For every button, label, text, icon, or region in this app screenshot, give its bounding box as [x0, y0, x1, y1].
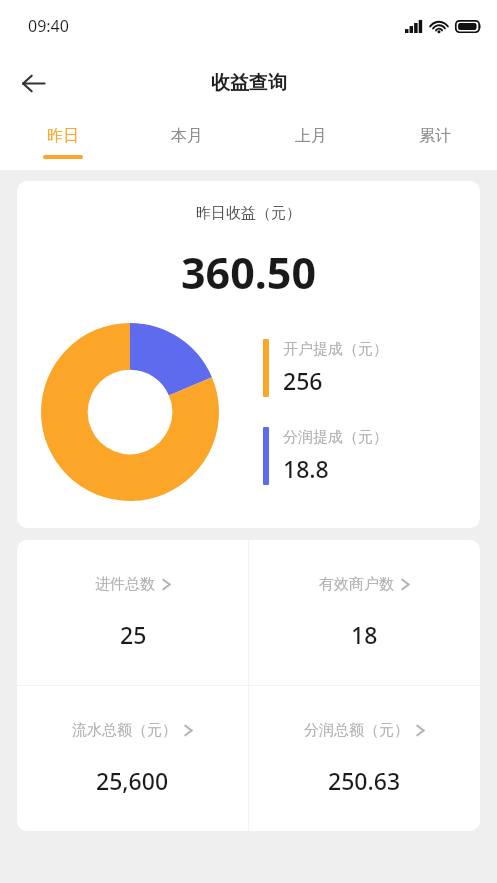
staticText: 18.8: [283, 453, 329, 484]
button[interactable]: 分润总额（元）: [249, 686, 480, 831]
staticText: 进件总数: [95, 575, 155, 594]
staticText: 25: [120, 619, 147, 650]
staticText: 收益查询: [211, 71, 287, 95]
staticText: 有效商户数: [319, 575, 394, 594]
staticText: 流水总额（元）: [72, 721, 177, 740]
staticText: 360.50: [181, 243, 317, 302]
staticText: 250.63: [328, 765, 401, 796]
button[interactable]: 上月: [249, 114, 373, 170]
staticText: 25,600: [96, 765, 169, 796]
staticText: 累计: [419, 126, 451, 146]
staticText: 昨日: [47, 126, 79, 146]
staticText: 分润总额（元）: [304, 721, 409, 740]
button[interactable]: 有效商户数: [249, 540, 480, 685]
button[interactable]: 昨日: [0, 114, 125, 170]
staticText: 开户提成（元）: [283, 340, 388, 359]
staticText: 昨日收益（元）: [196, 204, 301, 223]
button[interactable]: 累计: [373, 114, 497, 170]
button[interactable]: 本月: [125, 114, 249, 170]
staticText: 256: [283, 365, 323, 396]
button[interactable]: Back: [10, 60, 56, 106]
staticText: 09:40: [28, 15, 69, 37]
staticText: 本月: [171, 126, 203, 146]
staticText: 上月: [295, 126, 327, 146]
staticText: 18: [351, 619, 378, 650]
staticText: 分润提成（元）: [283, 428, 388, 447]
button[interactable]: 进件总数: [17, 540, 248, 685]
button[interactable]: 流水总额（元）: [17, 686, 248, 831]
